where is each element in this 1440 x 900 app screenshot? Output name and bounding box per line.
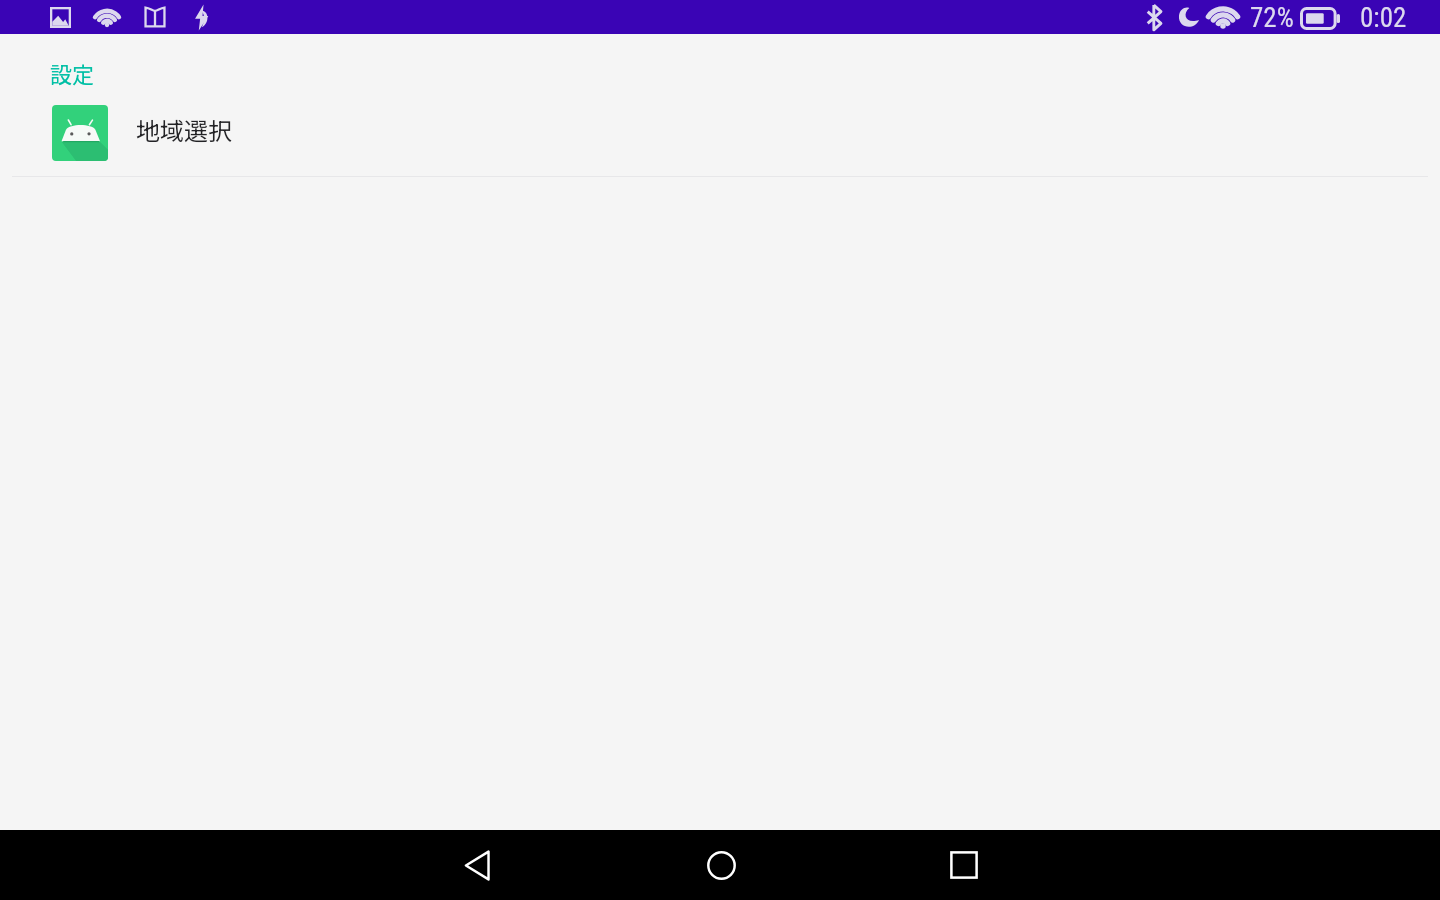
staticText: 設定 <box>50 57 95 89</box>
staticText: 72% <box>1250 2 1294 34</box>
staticText: 地域選択 <box>136 112 232 147</box>
button[interactable]: Back <box>442 830 512 900</box>
button[interactable]: Home <box>686 830 756 900</box>
button[interactable]: 地域選択 <box>0 98 1440 168</box>
button[interactable]: Recent apps <box>929 830 999 900</box>
staticText: 0:02 <box>1360 2 1407 34</box>
